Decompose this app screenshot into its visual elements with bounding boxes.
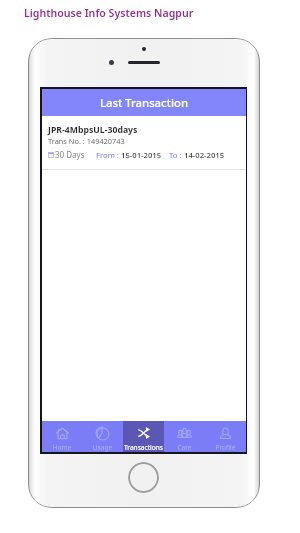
staticText: From :: [96, 150, 121, 160]
staticText: Profile: [205, 443, 246, 452]
staticText: JPR-4MbpsUL-30days: [48, 124, 138, 136]
staticText: Trans No. : 149420743: [48, 136, 125, 146]
button[interactable]: JPR-4MbpsUL-30days: [42, 116, 246, 170]
staticText: 15-01-2015: [121, 150, 162, 160]
button[interactable]: Usage: [82, 421, 123, 452]
staticText: Care: [164, 443, 205, 452]
staticText: Lighthouse Info Systems Nagpur: [24, 6, 194, 20]
button[interactable]: Profile: [205, 421, 246, 452]
staticText: 30 Days: [55, 149, 85, 160]
staticText: To :: [169, 150, 184, 160]
button[interactable]: Transactions: [123, 421, 164, 452]
button[interactable]: Care: [164, 421, 205, 452]
staticText: Last Transaction: [100, 95, 188, 110]
staticText: Usage: [82, 443, 123, 452]
staticText: 14-02-2015: [184, 150, 225, 160]
button[interactable]: Home: [42, 421, 82, 452]
staticText: Home: [42, 443, 82, 452]
staticText: Transactions: [123, 443, 164, 452]
